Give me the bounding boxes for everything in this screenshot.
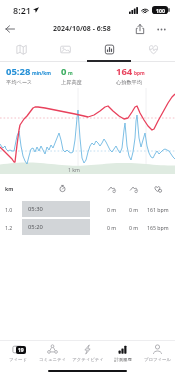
staticText: 0 m <box>129 206 139 213</box>
staticText: 100 <box>156 7 165 14</box>
staticText: 0 m <box>107 224 117 231</box>
staticText: 1.0 <box>5 206 13 213</box>
staticText: 心拍数平均 <box>116 79 142 86</box>
staticText: アクティビティ <box>72 357 104 363</box>
staticText: bpm <box>134 70 145 77</box>
button[interactable]: Map <box>0 39 43 60</box>
staticText: プロフィール <box>144 357 171 363</box>
staticText: 計測履歴 <box>114 357 132 363</box>
staticText: 2024/10/08 - 6:58 <box>53 24 111 34</box>
staticText: 05:20 <box>28 223 43 231</box>
button[interactable]: 1.2 <box>0 219 175 235</box>
staticText: 1.2 <box>5 224 13 231</box>
button[interactable]: プロフィール <box>140 341 175 365</box>
staticText: 165 bpm <box>147 224 169 231</box>
staticText: 161 bpm <box>147 206 169 213</box>
button[interactable]: Statistics <box>87 39 131 60</box>
button[interactable]: More options <box>150 19 172 39</box>
staticText: km <box>5 185 14 192</box>
staticText: 164 <box>116 65 133 78</box>
button[interactable]: 計測履歴 <box>105 341 140 365</box>
staticText: 0 <box>61 65 67 78</box>
staticText: min/km <box>32 70 51 77</box>
button[interactable]: 19 <box>0 341 35 365</box>
staticText: 平均ペース <box>6 79 33 86</box>
button[interactable]: 1.0 <box>0 201 175 217</box>
staticText: 05:28 <box>6 65 31 78</box>
button[interactable]: Photos <box>43 39 87 60</box>
staticText: 0 m <box>107 206 117 213</box>
button[interactable]: コミュニティ <box>35 341 70 365</box>
button[interactable]: Share <box>130 19 150 39</box>
staticText: 1 km <box>68 166 80 173</box>
button[interactable]: Back <box>0 19 20 39</box>
staticText: 上昇高度 <box>61 79 82 86</box>
staticText: 19 <box>18 347 24 354</box>
staticText: m <box>68 70 73 77</box>
staticText: フィード <box>9 357 27 363</box>
button[interactable]: アクティビティ <box>70 341 105 365</box>
staticText: コミュニティ <box>39 357 66 363</box>
staticText: 05:30 <box>28 205 43 213</box>
staticText: 0 m <box>129 224 139 231</box>
button[interactable]: Health <box>131 39 175 60</box>
staticText: 8:21 <box>13 4 31 16</box>
